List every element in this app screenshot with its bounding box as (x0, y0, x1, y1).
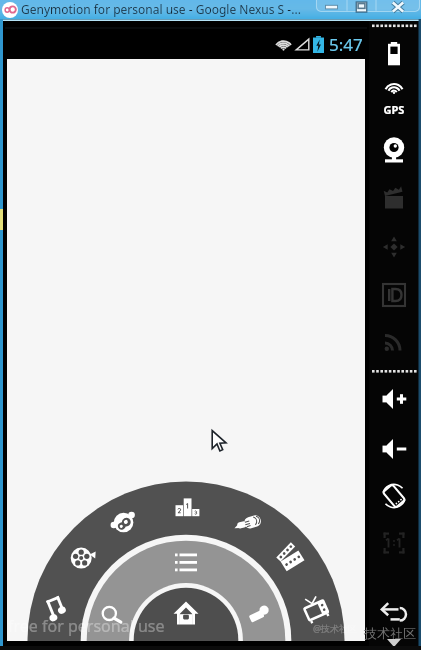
button[interactable]: Back (378, 597, 410, 629)
button[interactable]: Close (376, 0, 420, 15)
button[interactable]: Battery (378, 38, 410, 70)
button[interactable]: Rotate screen (378, 480, 410, 512)
button[interactable]: Volume down (378, 433, 410, 465)
button[interactable]: Actual size (378, 527, 410, 559)
staticText: Genymotion for personal use - Google Nex… (21, 1, 301, 17)
button[interactable]: Volume up (378, 383, 410, 415)
staticText: free for personal use (8, 615, 165, 637)
button[interactable]: GPS (378, 81, 410, 113)
staticText: @技术社区 (313, 622, 358, 634)
button[interactable]: Camera (378, 135, 410, 167)
staticText: 技术社区 (364, 625, 416, 641)
button[interactable]: D-pad (378, 231, 410, 263)
button[interactable]: Maximize (347, 0, 376, 15)
staticText: 5:47 (329, 33, 363, 56)
button[interactable]: Network (378, 325, 410, 357)
button[interactable]: Genymotion (2, 2, 18, 18)
staticText: GPS (378, 102, 410, 117)
button[interactable]: Identifiers (378, 279, 410, 311)
button[interactable]: Minimize (316, 0, 347, 15)
button[interactable]: Screen recorder (378, 183, 410, 215)
button[interactable]: Radial menu (7, 59, 365, 641)
